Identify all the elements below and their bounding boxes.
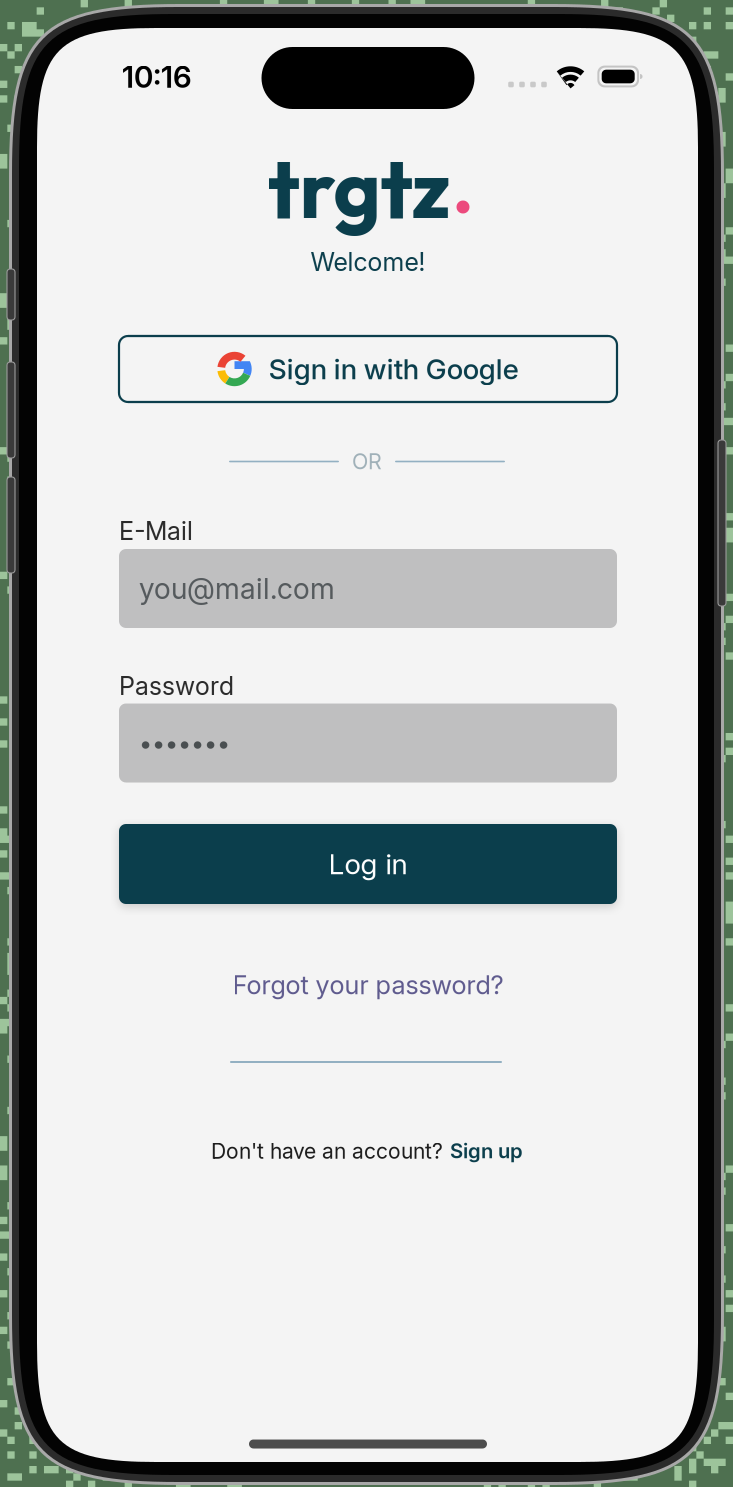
button[interactable]: Log in bbox=[119, 824, 617, 904]
staticText: OR bbox=[352, 449, 382, 474]
staticText: trgtz bbox=[267, 137, 450, 239]
staticText: E-Mail bbox=[119, 516, 193, 546]
staticText: Don't have an account? bbox=[211, 1138, 443, 1164]
staticText: ••••••• bbox=[139, 728, 230, 757]
staticText: Password bbox=[119, 671, 234, 701]
staticText: 10:16 bbox=[122, 59, 192, 95]
button[interactable]: Don't have an account? bbox=[211, 1133, 523, 1169]
staticText: Sign in with Google bbox=[269, 352, 519, 386]
button[interactable]: Forgot your password? bbox=[232, 963, 503, 1007]
staticText: Log in bbox=[328, 847, 407, 881]
staticText: Welcome! bbox=[310, 247, 425, 277]
button[interactable]: Sign in with Google bbox=[119, 336, 617, 402]
staticText: Sign up bbox=[450, 1139, 523, 1163]
staticText: you@mail.com bbox=[139, 571, 335, 606]
staticText: Forgot your password? bbox=[232, 969, 503, 1000]
